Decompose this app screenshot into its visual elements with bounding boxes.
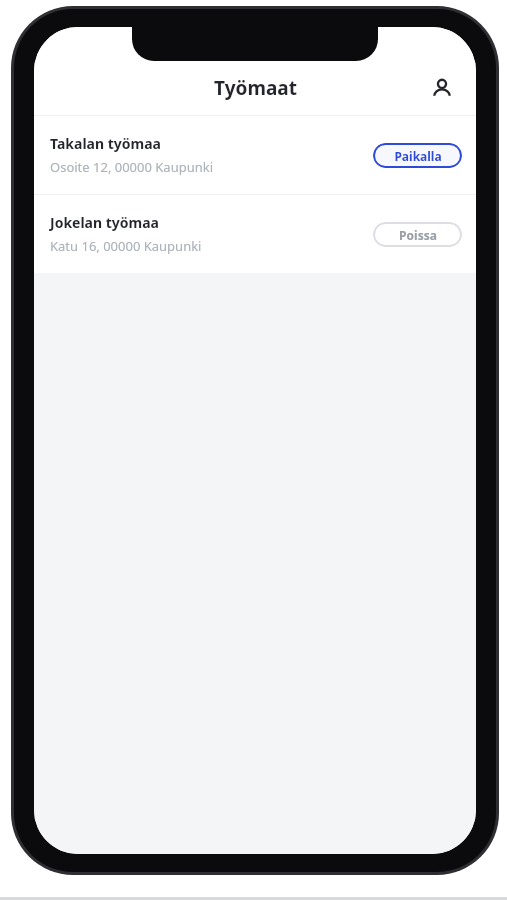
button[interactable]: Paikalla	[373, 143, 462, 168]
staticText: Työmaat	[214, 75, 297, 101]
button[interactable]: Jokelan työmaa	[34, 195, 476, 273]
staticText: Poissa	[399, 227, 437, 243]
staticText: Jokelan työmaa	[50, 213, 159, 232]
staticText: Takalan työmaa	[50, 134, 161, 153]
button[interactable]: Poissa	[373, 222, 462, 247]
staticText: Osoite 12, 00000 Kaupunki	[50, 158, 214, 176]
staticText: Katu 16, 00000 Kaupunki	[50, 237, 202, 255]
button[interactable]: Profile	[422, 69, 462, 109]
button[interactable]: Takalan työmaa	[34, 116, 476, 194]
staticText: Paikalla	[394, 148, 442, 164]
